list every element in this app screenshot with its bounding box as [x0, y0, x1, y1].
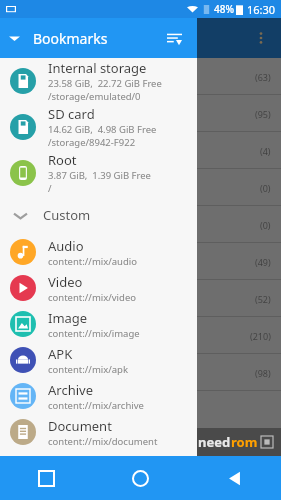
button[interactable]: Custom [0, 196, 197, 234]
staticText: Video [48, 273, 83, 291]
button[interactable]: drwxrwxrwx [0, 243, 281, 280]
button[interactable]: Bookmarks [0, 18, 197, 58]
button[interactable]: APK [0, 342, 197, 378]
staticText: 16:30 [247, 2, 276, 17]
button[interactable]: Document [0, 414, 197, 450]
button[interactable]: Archive [0, 378, 197, 414]
button[interactable]: dr-xr-x [0, 206, 281, 243]
staticText: (210) [250, 330, 271, 342]
staticText: content://mix/archive [48, 399, 144, 412]
staticText: (49) [255, 256, 271, 268]
staticText: /storage/emulated/0 [48, 90, 141, 103]
button[interactable]: Image [0, 306, 197, 342]
staticText: drwxrwxrwx [10, 367, 63, 379]
staticText: Image [48, 309, 88, 327]
staticText: drwxrwx–x [10, 293, 56, 305]
staticText: Root [48, 151, 77, 169]
button[interactable]: Sort [161, 25, 187, 51]
button[interactable]: Recent apps [0, 456, 93, 500]
button[interactable]: More options [247, 24, 275, 52]
button[interactable]: Internal storage [0, 58, 197, 104]
staticText: / [48, 182, 52, 195]
staticText: Bookmarks [33, 29, 108, 48]
staticText: content://mix/video [48, 291, 136, 304]
staticText: APK [48, 345, 73, 363]
staticText: Audio [48, 237, 84, 255]
staticText: content://mix/image [48, 327, 140, 340]
button[interactable]: drwxrwxrwx [0, 354, 281, 391]
staticText: (63) [255, 71, 271, 83]
button[interactable]: SD card [0, 104, 197, 150]
staticText: Archive [48, 381, 93, 399]
button[interactable]: drwxrwx–x [0, 280, 281, 317]
staticText: (98) [255, 367, 271, 379]
staticText: content://mix/apk [48, 363, 129, 376]
staticText: drwxr-x [10, 71, 43, 83]
staticText: Document [48, 417, 112, 435]
staticText: (0) [260, 219, 271, 231]
staticText: Internal storage [48, 59, 147, 77]
staticText: 3.87 GiB, 1.39 GiB Free [48, 169, 151, 182]
staticText: dr-xr-x [10, 330, 39, 342]
staticText: (0) [260, 182, 271, 194]
staticText: drwxrwxr-x [10, 145, 59, 157]
staticText: 48% [214, 2, 234, 16]
button[interactable]: Video [0, 270, 197, 306]
staticText: rom [231, 433, 258, 451]
staticText: /storage/8942-F922 [48, 136, 136, 149]
button[interactable]: drwxr-x [0, 58, 281, 95]
staticText: Custom [43, 206, 91, 224]
button[interactable]: Home [93, 456, 187, 500]
button[interactable]: Root [0, 150, 197, 196]
staticText: need [198, 433, 231, 451]
staticText: 14.62 GiB, 4.98 GiB Free [48, 123, 157, 136]
button[interactable]: dr-xr-x [0, 317, 281, 354]
staticText: content://mix/document [48, 435, 158, 448]
staticText: content://mix/audio [48, 255, 138, 268]
staticText: (52) [255, 293, 271, 305]
button[interactable]: Back [187, 456, 281, 500]
button[interactable]: drwxrwxr-x [0, 132, 281, 169]
staticText: drwxrwxrwx [10, 256, 63, 268]
button[interactable]: drwxrwx— [0, 95, 281, 132]
button[interactable]: dr— [0, 169, 281, 206]
staticText: drwxrwx— [10, 108, 56, 120]
staticText: (95) [255, 108, 271, 120]
button[interactable]: Audio [0, 234, 197, 270]
staticText: dr— [10, 182, 29, 194]
staticText: (4) [260, 145, 271, 157]
staticText: SD card [48, 105, 95, 123]
staticText: 23.58 GiB, 22.72 GiB Free [48, 77, 162, 90]
